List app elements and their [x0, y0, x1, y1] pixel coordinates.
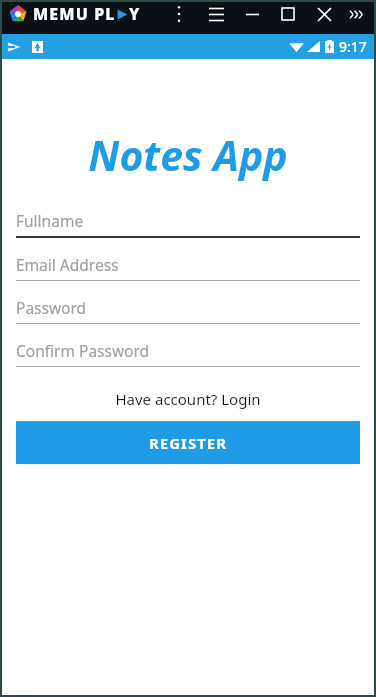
button[interactable]: Password [16, 292, 360, 324]
button[interactable]: Maximize [276, 2, 300, 26]
staticText: MEMU PL [33, 3, 116, 25]
button[interactable]: Confirm Password [16, 335, 360, 367]
staticText: Password [16, 297, 87, 318]
button[interactable]: Close [312, 2, 336, 26]
button[interactable]: Minimize [240, 2, 264, 26]
staticText: Confirm Password [16, 340, 150, 361]
staticText: Y [129, 3, 141, 25]
staticText: Fullname [16, 210, 84, 231]
button[interactable]: Email Address [16, 249, 360, 281]
button[interactable]: Have account? Login [2, 388, 374, 410]
button[interactable]: Menu [204, 2, 228, 26]
button[interactable]: REGISTER [16, 421, 360, 464]
button[interactable]: More options [167, 2, 191, 26]
staticText: REGISTER [149, 433, 228, 453]
button[interactable]: Fullname [16, 205, 360, 238]
staticText: Email Address [16, 254, 119, 275]
staticText: Notes App [2, 127, 374, 183]
staticText: 9:17 [339, 37, 367, 56]
staticText: Have account? Login [115, 389, 261, 409]
button[interactable]: Expand sidebar [345, 2, 369, 26]
